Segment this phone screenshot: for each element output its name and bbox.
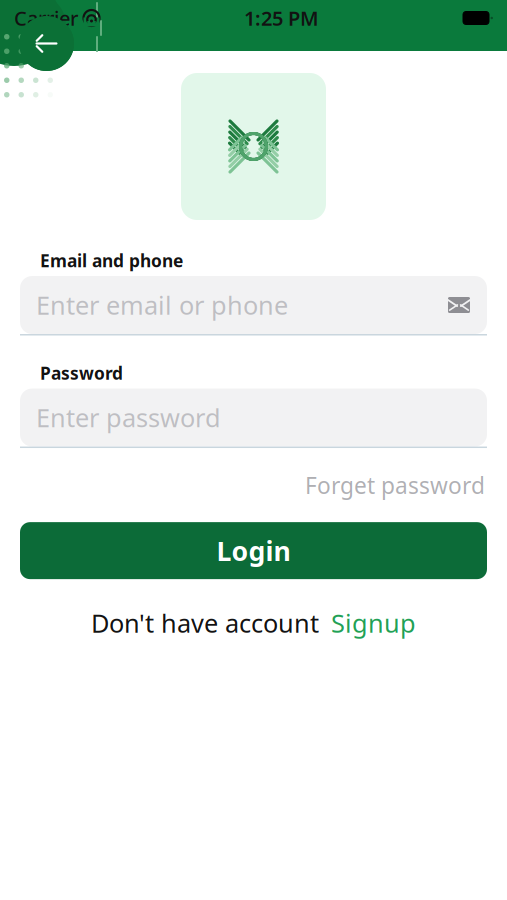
staticText: Don't have account	[91, 606, 319, 640]
button[interactable]: Forget password	[20, 448, 487, 500]
staticText: Email and phone	[40, 249, 183, 272]
button[interactable]: Signup	[319, 606, 416, 640]
staticText: 1:25 PM	[244, 5, 319, 31]
staticText: Signup	[331, 606, 416, 640]
staticText: Enter password	[36, 401, 221, 434]
button[interactable]: Back	[19, 16, 74, 71]
staticText: Login	[216, 533, 290, 568]
staticText: Carrier	[14, 5, 78, 31]
staticText: Forget password	[305, 470, 485, 500]
button[interactable]: Login	[20, 522, 487, 579]
staticText: Password	[40, 361, 123, 384]
staticText: Enter email or phone	[36, 288, 288, 322]
